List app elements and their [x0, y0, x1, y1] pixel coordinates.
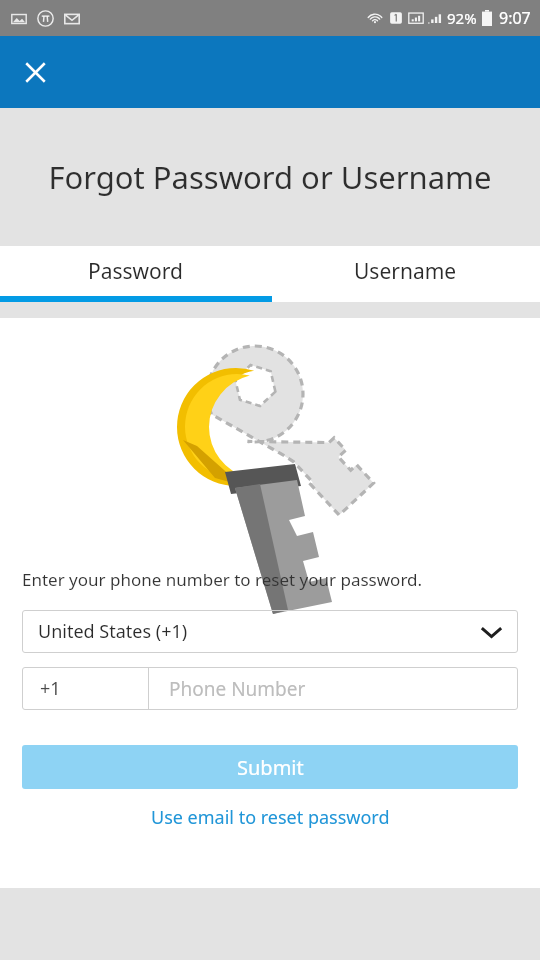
button[interactable]: Phone Number: [149, 667, 518, 710]
staticText: Forgot Password or Username: [48, 156, 492, 198]
staticText: Password: [88, 257, 183, 286]
button[interactable]: United States (+1): [22, 610, 518, 653]
button[interactable]: Password: [0, 246, 270, 296]
button[interactable]: Submit: [22, 745, 518, 789]
staticText: +1: [40, 676, 61, 701]
staticText: Submit: [237, 754, 304, 781]
staticText: 9:07: [499, 7, 531, 29]
staticText: Enter your phone number to reset your pa…: [22, 568, 423, 591]
staticText: Use email to reset password: [151, 805, 390, 830]
button[interactable]: Username: [270, 246, 540, 296]
staticText: Phone Number: [169, 676, 306, 702]
staticText: 92%: [447, 8, 477, 28]
button[interactable]: Close: [9, 46, 61, 98]
button[interactable]: +1: [22, 667, 148, 710]
staticText: Username: [354, 257, 457, 286]
button[interactable]: Use email to reset password: [141, 797, 400, 838]
staticText: United States (+1): [38, 619, 480, 644]
